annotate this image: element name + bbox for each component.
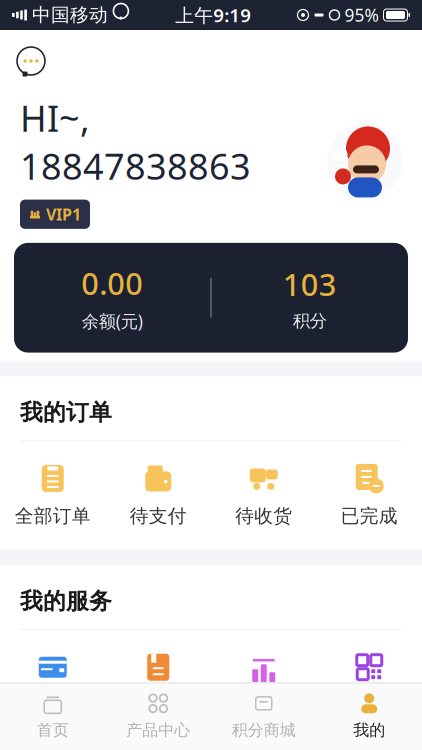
staticText: 首页 xyxy=(37,720,69,740)
button[interactable]: 已完成 xyxy=(316,463,422,527)
staticText: 全部订单 xyxy=(15,504,91,527)
staticText: 待支付 xyxy=(130,504,187,527)
staticText: 积分 xyxy=(293,310,327,332)
button[interactable]: 首页 xyxy=(0,691,105,740)
staticText: 我的订单 xyxy=(20,399,112,426)
button[interactable]: 我的 xyxy=(316,691,422,740)
button[interactable]: 银行卡 xyxy=(0,652,105,716)
staticText: 我的 xyxy=(353,720,385,740)
button[interactable]: 积分商城 xyxy=(211,691,316,740)
staticText: 盈利规则 xyxy=(120,693,196,716)
staticText: HI~,18847838863 xyxy=(20,94,251,190)
button[interactable]: 消息 xyxy=(14,44,48,78)
staticText: 积分商城 xyxy=(232,720,296,740)
staticText: 银行卡 xyxy=(24,693,81,716)
button[interactable]: 待支付 xyxy=(105,463,211,527)
staticText: 已完成 xyxy=(341,504,398,527)
staticText: 邀请二维码 xyxy=(322,693,417,716)
button[interactable]: 盈利规则 xyxy=(105,652,211,716)
staticText: 余额(元) xyxy=(82,310,143,333)
staticText: 0.00 xyxy=(81,263,143,304)
staticText: 我的服务 xyxy=(20,587,112,615)
staticText: 103 xyxy=(283,264,337,304)
button[interactable]: 待收货 xyxy=(211,463,316,527)
staticText: VIP1 xyxy=(46,204,81,225)
staticText: 上午9:19 xyxy=(175,3,251,27)
staticText: 产品中心 xyxy=(126,720,190,740)
button[interactable]: 全部订单 xyxy=(0,463,105,527)
staticText: 待收货 xyxy=(235,504,292,527)
staticText: 中国移动 xyxy=(32,3,108,26)
staticText: 95% xyxy=(344,3,378,26)
button[interactable]: 邀请二维码 xyxy=(316,652,422,716)
staticText: 数据统计 xyxy=(226,693,302,716)
button[interactable]: 产品中心 xyxy=(105,691,211,740)
button[interactable]: 数据统计 xyxy=(211,652,316,716)
